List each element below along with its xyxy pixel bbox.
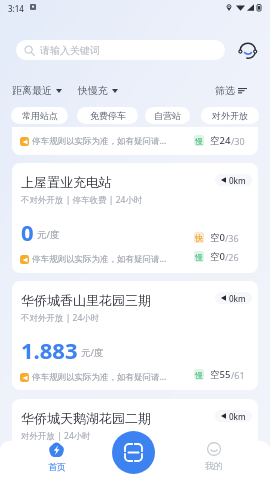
button[interactable]: 请输入关键词 — [16, 40, 225, 60]
button[interactable]: 自营站 — [145, 107, 190, 124]
button[interactable]: 扫一扫 — [112, 431, 155, 474]
staticText: 上屋置业充电站 — [21, 174, 211, 190]
staticText: 0km — [229, 411, 246, 422]
staticText: 停车规则以实际为准，如有疑问请... — [32, 253, 167, 265]
staticText: 距离最近 — [12, 84, 52, 97]
staticText: 不对外开放 | 24小时 — [21, 312, 100, 324]
staticText: 停车规则以实际为准，如有疑问请... — [32, 371, 167, 383]
button[interactable]: 免费停车 — [77, 107, 138, 124]
staticText: 0km — [229, 175, 246, 186]
button[interactable]: 上屋置业充电站 — [12, 163, 258, 273]
button[interactable]: 快慢充 — [78, 84, 118, 97]
staticText: 不对外开放 | 停车收费 | 24小时 — [21, 194, 143, 206]
staticText: 1.883 — [21, 335, 78, 365]
staticText: 华侨城香山里花园三期 — [21, 292, 211, 308]
staticText: /26 — [225, 251, 239, 263]
button[interactable]: 0km — [215, 410, 252, 422]
staticText: 首页 — [48, 461, 66, 472]
staticText: 元/度 — [81, 346, 104, 359]
staticText: 筛选 — [215, 84, 235, 97]
staticText: 快慢充 — [78, 84, 108, 97]
staticText: 慢 — [195, 252, 203, 262]
staticText: 请输入关键词 — [40, 44, 100, 57]
button[interactable]: 对外开放 — [201, 107, 259, 124]
staticText: 快 — [195, 233, 203, 243]
staticText: 免费停车 — [90, 110, 126, 121]
button[interactable]: 华侨城天鹅湖花园二期 — [12, 399, 258, 469]
staticText: 停车规则以实际为准，如有疑问请... — [32, 135, 167, 147]
button[interactable]: 0km — [215, 174, 252, 186]
staticText: 空0 — [210, 231, 225, 244]
staticText: 0km — [229, 293, 246, 304]
button[interactable]: 0km — [215, 292, 252, 304]
button[interactable]: 首页 — [36, 442, 77, 473]
button[interactable]: 距离最近 — [12, 84, 62, 97]
staticText: 3:14 — [8, 3, 24, 14]
staticText: 对外开放 — [212, 110, 248, 121]
staticText: 空24 — [210, 134, 231, 147]
staticText: 常用站点 — [22, 110, 58, 121]
button[interactable]: 华侨城香山里花园三期 — [12, 281, 258, 390]
staticText: 空0 — [210, 250, 225, 263]
staticText: 空55 — [210, 368, 231, 381]
button[interactable]: 常用站点 — [11, 107, 68, 124]
staticText: 慢 — [195, 136, 203, 146]
staticText: 自营站 — [154, 110, 181, 121]
staticText: 对外开放 | 24小时 — [21, 430, 91, 442]
staticText: 0 — [21, 217, 34, 247]
button[interactable]: 我的 — [193, 442, 234, 473]
button[interactable]: 在线客服 — [236, 40, 260, 64]
button[interactable]: 停车规则以实际为准，如有疑问请... — [12, 127, 258, 155]
staticText: 华侨城天鹅湖花园二期 — [21, 410, 211, 426]
staticText: 慢 — [195, 370, 203, 380]
staticText: 我的 — [205, 460, 223, 471]
button[interactable]: 筛选 — [215, 84, 247, 97]
staticText: 元/度 — [37, 228, 60, 241]
staticText: /30 — [231, 135, 245, 147]
staticText: /36 — [225, 232, 239, 244]
staticText: /61 — [231, 369, 245, 381]
